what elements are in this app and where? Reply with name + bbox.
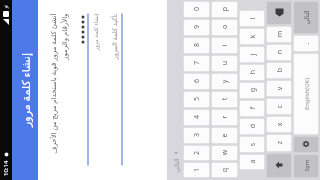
staticText: o (219, 24, 229, 29)
staticText: . (301, 42, 311, 44)
staticText: 5 (191, 96, 201, 101)
staticText: Sym (302, 159, 310, 171)
button[interactable]: 4 (183, 109, 209, 125)
button[interactable]: s (239, 136, 264, 152)
staticText: 1 (191, 167, 201, 172)
staticText: w (219, 149, 229, 155)
staticText: English(UK) (302, 77, 310, 110)
button[interactable]: 7 (183, 55, 209, 71)
button[interactable]: g (239, 82, 264, 98)
staticText: إنشاء كلمة مرور (91, 13, 98, 50)
button[interactable]: m (266, 26, 291, 42)
staticText: ⚡ (3, 4, 10, 9)
staticText: a (247, 159, 257, 163)
staticText: p (219, 6, 229, 11)
staticText: l (247, 17, 257, 19)
staticText: التالي (172, 158, 179, 172)
button[interactable]: 9 (183, 19, 209, 35)
button[interactable]: . (293, 35, 318, 51)
staticText: q (219, 167, 229, 172)
staticText: k (247, 34, 257, 38)
staticText: c (274, 104, 284, 108)
staticText: g (247, 87, 257, 92)
staticText: b (274, 67, 284, 72)
button[interactable]: z (266, 134, 291, 151)
staticText: 0 (191, 6, 201, 11)
button[interactable]: Sym (293, 154, 318, 177)
button[interactable]: a (239, 154, 264, 169)
button[interactable]: f (239, 100, 264, 116)
staticText: v (274, 86, 284, 90)
staticText: 6 (191, 78, 201, 83)
button[interactable]: 5 (183, 91, 209, 107)
staticText: 2 (191, 150, 201, 155)
button[interactable]: l (239, 10, 264, 26)
button[interactable]: h (239, 64, 264, 80)
button[interactable]: Backspace (266, 1, 291, 24)
button[interactable]: Shift (266, 153, 291, 177)
staticText: r (219, 115, 229, 118)
staticText: t (219, 97, 229, 100)
button[interactable]: p (211, 1, 237, 17)
button[interactable]: r (211, 109, 237, 125)
staticText: h (247, 69, 257, 74)
button[interactable]: j (239, 46, 264, 62)
staticText: d (247, 123, 257, 128)
button[interactable]: v (266, 80, 291, 96)
staticText: y (219, 79, 229, 83)
button[interactable]: x (266, 116, 291, 132)
button[interactable]: w (211, 145, 237, 160)
button[interactable]: 1 (183, 162, 209, 177)
staticText: x (274, 122, 284, 126)
button[interactable]: y (211, 73, 237, 89)
staticText: j (247, 53, 257, 55)
staticText: z (274, 140, 284, 144)
staticText: 9 (191, 24, 201, 29)
staticText: u (219, 60, 229, 65)
staticText: m (274, 30, 284, 37)
staticText: أنشئ كلمة مرور قوية باستخدام مزيج من الأ… (48, 13, 68, 165)
button[interactable]: b (266, 62, 291, 78)
button[interactable]: e (211, 127, 237, 143)
button[interactable]: 6 (183, 73, 209, 89)
button[interactable]: 0 (183, 1, 209, 17)
staticText: i (219, 44, 229, 46)
staticText: e (219, 133, 229, 137)
button[interactable]: Next (172, 150, 179, 172)
staticText: 7 (191, 60, 201, 65)
staticText: f (247, 106, 257, 109)
button[interactable]: u (211, 55, 237, 71)
button[interactable]: 8 (183, 37, 209, 53)
staticText: 8 (191, 42, 201, 47)
button[interactable]: 3 (183, 127, 209, 143)
button[interactable]: Settings (293, 136, 318, 152)
staticText: n (274, 49, 284, 54)
staticText: التالي (302, 10, 309, 24)
staticText: 4 (191, 114, 201, 119)
button[interactable]: i (211, 37, 237, 53)
button[interactable]: English(UK) (293, 53, 318, 134)
staticText: s (247, 142, 257, 146)
staticText: 3 (191, 132, 201, 137)
staticText: إنشاء كلمة مرور (18, 53, 33, 127)
button[interactable]: 2 (183, 145, 209, 160)
staticText: 10:14 (2, 160, 10, 176)
button[interactable]: c (266, 98, 291, 114)
button[interactable]: o (211, 19, 237, 35)
button[interactable]: k (239, 28, 264, 44)
button[interactable]: التالي (293, 1, 318, 33)
staticText: تأكيد كلمة المرور (109, 13, 118, 59)
button[interactable]: d (239, 118, 264, 134)
button[interactable]: t (211, 91, 237, 107)
button[interactable]: n (266, 44, 291, 60)
button[interactable]: q (211, 162, 237, 177)
